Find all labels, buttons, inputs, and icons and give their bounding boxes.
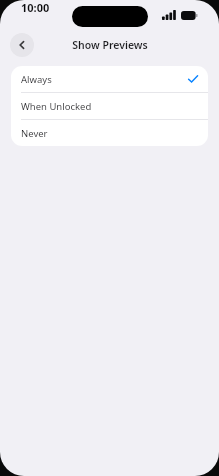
- button[interactable]: When Unlocked: [11, 93, 208, 119]
- staticText: Always: [21, 73, 52, 86]
- button[interactable]: Back: [10, 33, 34, 57]
- staticText: 10:00: [21, 0, 50, 15]
- button[interactable]: Never: [11, 120, 208, 146]
- staticText: When Unlocked: [21, 100, 92, 113]
- button[interactable]: Always: [11, 66, 208, 92]
- staticText: Never: [21, 127, 48, 140]
- staticText: Show Previews: [72, 38, 148, 52]
